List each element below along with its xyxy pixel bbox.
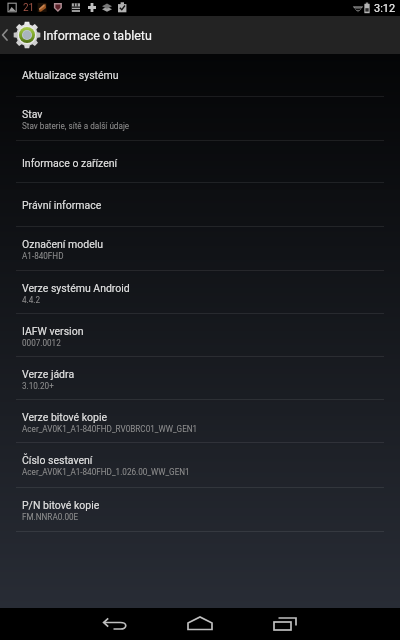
staticText: Číslo sestavení: [22, 454, 93, 466]
staticText: Informace o zařízení: [22, 157, 118, 169]
staticText: Stav baterie, sítě a další údaje: [22, 121, 130, 131]
staticText: 21: [23, 2, 35, 14]
button[interactable]: Informace o zařízení: [0, 141, 400, 183]
staticText: Informace o tabletu: [43, 28, 152, 43]
staticText: 3:12: [374, 2, 396, 15]
button[interactable]: Označení modelu: [0, 227, 400, 271]
button[interactable]: Právní informace: [0, 183, 400, 227]
button[interactable]: P/N bitové kopie: [0, 488, 400, 532]
button[interactable]: Recent apps: [255, 608, 315, 640]
button[interactable]: Aktualizace systému: [0, 54, 400, 97]
staticText: A1-840FHD: [22, 251, 64, 261]
staticText: Právní informace: [22, 199, 102, 211]
staticText: Verze jádra: [22, 368, 75, 380]
staticText: Acer_AV0K1_A1-840FHD_1.026.00_WW_GEN1: [22, 467, 190, 477]
staticText: Označení modelu: [22, 238, 104, 250]
staticText: IAFW version: [22, 325, 84, 337]
button[interactable]: Back: [85, 608, 145, 640]
staticText: FM.NNRA0.00E: [22, 512, 79, 522]
button[interactable]: Verze systému Android: [0, 271, 400, 314]
staticText: P/N bitové kopie: [22, 499, 100, 511]
staticText: 0007.0012: [22, 338, 61, 348]
button[interactable]: Verze bitové kopie: [0, 400, 400, 443]
staticText: 3.10.20+: [22, 381, 54, 391]
staticText: 4.4.2: [22, 295, 41, 305]
button[interactable]: Stav: [0, 97, 400, 141]
button[interactable]: Číslo sestavení: [0, 443, 400, 488]
button[interactable]: Navigate up: [0, 16, 43, 54]
button[interactable]: IAFW version: [0, 314, 400, 357]
button[interactable]: Verze jádra: [0, 357, 400, 400]
staticText: Aktualizace systému: [22, 69, 119, 81]
staticText: Verze bitové kopie: [22, 411, 108, 423]
staticText: Acer_AV0K1_A1-840FHD_RV0BRC01_WW_GEN1: [22, 424, 198, 434]
staticText: Stav: [22, 108, 43, 120]
staticText: Verze systému Android: [22, 282, 130, 294]
button[interactable]: Home: [170, 608, 230, 640]
